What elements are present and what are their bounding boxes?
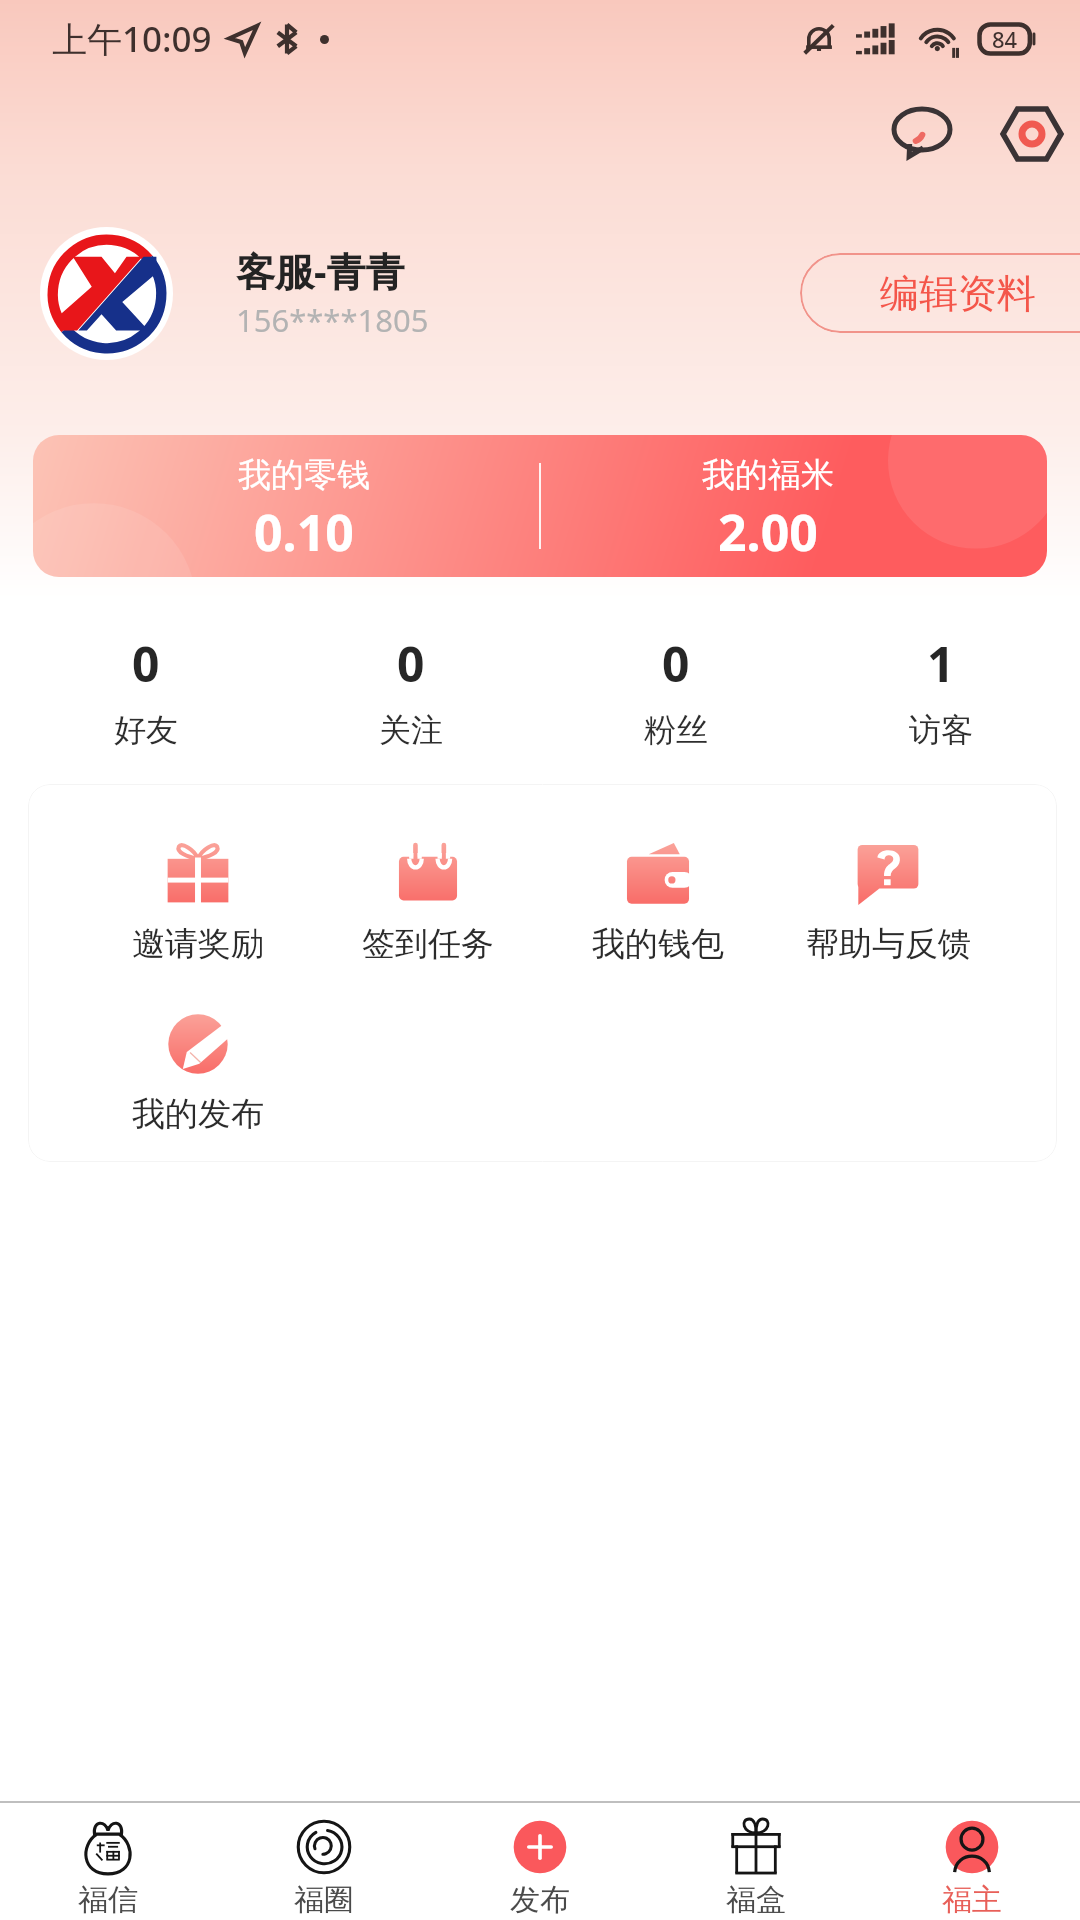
staticText: 156****1805: [236, 299, 429, 341]
staticText: 1: [927, 631, 955, 696]
staticText: 粉丝: [644, 710, 708, 750]
button[interactable]: 福盒: [648, 1805, 864, 1919]
button[interactable]: 编辑资料: [800, 253, 1080, 333]
staticText: 编辑资料: [880, 269, 1036, 318]
button[interactable]: 我的钱包: [543, 841, 773, 965]
button[interactable]: Messages: [875, 87, 969, 181]
staticText: 签到任务: [362, 923, 494, 965]
staticText: 上午10:09: [52, 15, 212, 63]
staticText: 0.10: [254, 498, 354, 566]
button[interactable]: 福圈: [216, 1805, 432, 1919]
staticText: 84: [992, 24, 1018, 54]
staticText: 帮助与反馈: [806, 923, 971, 965]
button[interactable]: 我的零钱: [33, 435, 539, 577]
button[interactable]: 0: [13, 621, 278, 760]
button[interactable]: Scan: [985, 87, 1079, 181]
staticText: 我的福米: [702, 454, 834, 496]
button[interactable]: 发布: [432, 1805, 648, 1919]
staticText: 福主: [942, 1881, 1002, 1919]
button[interactable]: 邀请奖励: [83, 841, 313, 965]
staticText: 0: [397, 631, 425, 696]
button[interactable]: 签到任务: [313, 841, 543, 965]
staticText: 0: [132, 631, 160, 696]
button[interactable]: 我的发布: [83, 1011, 313, 1135]
button[interactable]: 我的福米: [541, 435, 1047, 577]
staticText: 邀请奖励: [132, 923, 264, 965]
button[interactable]: 福主: [864, 1805, 1080, 1919]
staticText: 关注: [379, 710, 443, 750]
staticText: 福盒: [726, 1881, 786, 1919]
staticText: 我的零钱: [238, 454, 370, 496]
staticText: 发布: [510, 1881, 570, 1919]
staticText: 福信: [78, 1881, 138, 1919]
staticText: 2.00: [718, 498, 818, 566]
button[interactable]: Avatar: [40, 227, 173, 360]
staticText: 我的钱包: [592, 923, 724, 965]
staticText: 访客: [909, 710, 973, 750]
button[interactable]: 福信: [0, 1805, 216, 1919]
staticText: 好友: [114, 710, 178, 750]
button[interactable]: 0: [543, 621, 808, 760]
staticText: 我的发布: [132, 1093, 264, 1135]
staticText: 客服-青青: [236, 244, 405, 297]
button[interactable]: 帮助与反馈: [773, 841, 1003, 965]
button[interactable]: 1: [808, 621, 1073, 760]
staticText: 0: [662, 631, 690, 696]
staticText: 福圈: [294, 1881, 354, 1919]
button[interactable]: 0: [278, 621, 543, 760]
